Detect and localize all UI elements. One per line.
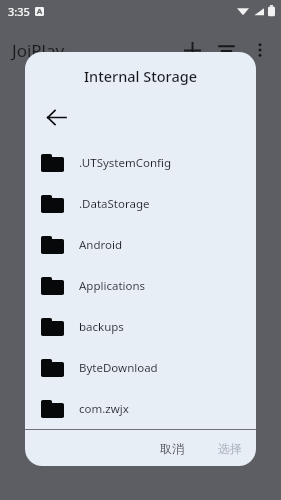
button[interactable]: More options: [243, 33, 277, 67]
button[interactable]: Android: [25, 224, 256, 265]
button[interactable]: Add: [175, 33, 209, 67]
staticText: 选择: [218, 441, 242, 456]
button[interactable]: .DataStorage: [25, 183, 256, 224]
staticText: ByteDownload: [79, 360, 158, 376]
staticText: backups: [79, 319, 124, 335]
button[interactable]: 选择: [208, 435, 252, 462]
staticText: Internal Storage: [25, 66, 256, 86]
staticText: com.zwjx: [79, 401, 129, 417]
button[interactable]: Back: [37, 98, 75, 136]
staticText: 3:35: [8, 4, 30, 19]
staticText: Android: [79, 237, 123, 253]
button[interactable]: Filter: [209, 33, 243, 67]
staticText: JoiPlay: [12, 39, 65, 62]
button[interactable]: backups: [25, 306, 256, 347]
staticText: .DataStorage: [79, 196, 150, 212]
button[interactable]: ByteDownload: [25, 347, 256, 388]
staticText: Applications: [79, 278, 146, 294]
staticText: 取消: [160, 441, 184, 456]
button[interactable]: .UTSystemConfig: [25, 142, 256, 183]
button[interactable]: com.zwjx: [25, 388, 256, 429]
button[interactable]: 取消: [150, 435, 194, 462]
staticText: .UTSystemConfig: [79, 155, 172, 171]
button[interactable]: Applications: [25, 265, 256, 306]
